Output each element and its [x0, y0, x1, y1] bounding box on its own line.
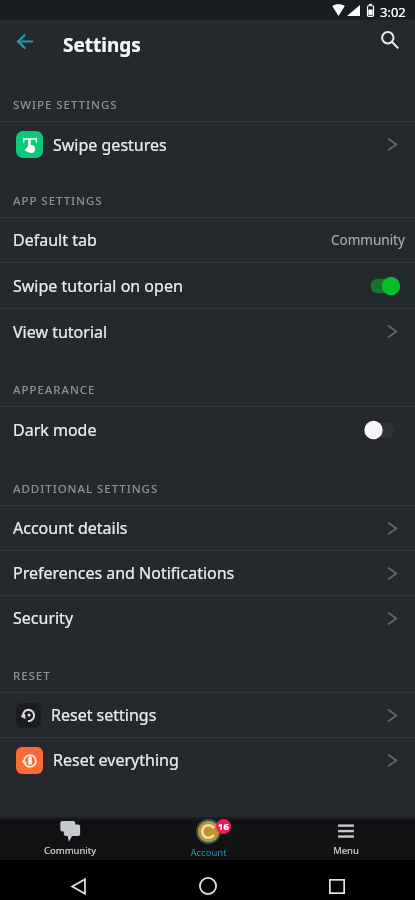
button[interactable]: Search — [369, 19, 409, 59]
button[interactable]: Swipe tutorial on open — [0, 263, 415, 308]
button[interactable]: View tutorial — [0, 309, 415, 354]
button[interactable]: Account details — [0, 506, 415, 550]
staticText: Account — [190, 846, 227, 859]
button[interactable]: Back — [62, 870, 94, 900]
button[interactable]: Dark mode — [0, 407, 415, 452]
button[interactable]: Swipe gestures — [0, 122, 415, 167]
staticText: APP SETTINGS — [13, 193, 103, 209]
staticText: View tutorial — [13, 321, 108, 343]
staticText: APPEARANCE — [13, 382, 96, 398]
staticText: RESET — [13, 668, 51, 684]
staticText: Account details — [13, 517, 128, 539]
staticText: Security — [13, 607, 74, 629]
staticText: Reset everything — [53, 749, 179, 771]
staticText: Settings — [63, 32, 141, 58]
staticText: Reset settings — [51, 704, 157, 726]
staticText: Swipe tutorial on open — [13, 275, 183, 297]
button[interactable]: Preferences and Notifications — [0, 551, 415, 595]
staticText: Preferences and Notifications — [13, 562, 235, 584]
button[interactable]: Default tab — [0, 218, 415, 262]
staticText: Swipe gestures — [53, 134, 167, 156]
button[interactable]: 16 — [139, 817, 277, 860]
button[interactable]: Menu — [277, 817, 415, 860]
button[interactable]: Back — [5, 21, 45, 61]
staticText: 3:02 — [380, 3, 406, 21]
button[interactable]: Reset settings — [0, 693, 415, 737]
staticText: Menu — [333, 844, 359, 857]
button[interactable]: Community — [0, 817, 139, 860]
staticText: ADDITIONAL SETTINGS — [13, 481, 159, 497]
button[interactable]: Recents — [321, 870, 353, 900]
staticText: Community — [331, 231, 405, 249]
staticText: Default tab — [13, 229, 97, 251]
staticText: Dark mode — [13, 419, 97, 441]
button[interactable]: Reset everything — [0, 738, 415, 782]
button[interactable]: Home — [192, 870, 224, 900]
button[interactable]: Security — [0, 596, 415, 640]
staticText: Community — [44, 844, 96, 857]
staticText: 16 — [218, 820, 229, 833]
staticText: SWIPE SETTINGS — [13, 97, 118, 113]
